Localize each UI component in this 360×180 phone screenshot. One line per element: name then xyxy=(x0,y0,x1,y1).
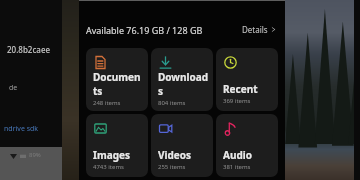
staticText: 369 items xyxy=(223,97,251,105)
staticText: 20.8b2caee xyxy=(7,44,51,55)
staticText: 4743 items xyxy=(93,163,124,171)
staticText: Audio xyxy=(223,148,252,162)
staticText: 255 items xyxy=(158,163,186,171)
button[interactable]: Recent xyxy=(216,48,278,111)
button[interactable]: Documents xyxy=(86,48,148,111)
staticText: ndrive sdk xyxy=(4,124,39,134)
button[interactable]: Audio xyxy=(216,114,278,177)
staticText: Videos xyxy=(158,148,192,162)
staticText: Documents xyxy=(93,70,143,98)
staticText: 89% xyxy=(29,151,41,159)
staticText: Downloads xyxy=(158,70,208,98)
staticText: Available 76.19 GB / 128 GB xyxy=(86,24,203,36)
staticText: Recent xyxy=(223,82,258,96)
staticText: de xyxy=(9,83,18,93)
button[interactable]: Details xyxy=(240,22,278,37)
button[interactable]: Videos xyxy=(151,114,213,177)
button[interactable]: Downloads xyxy=(151,48,213,111)
staticText: Details xyxy=(242,24,268,35)
staticText: 248 items xyxy=(93,99,121,105)
staticText: Images xyxy=(93,148,130,162)
button[interactable]: Images xyxy=(86,114,148,177)
staticText: 381 items xyxy=(223,163,251,171)
staticText: 804 items xyxy=(158,99,186,105)
